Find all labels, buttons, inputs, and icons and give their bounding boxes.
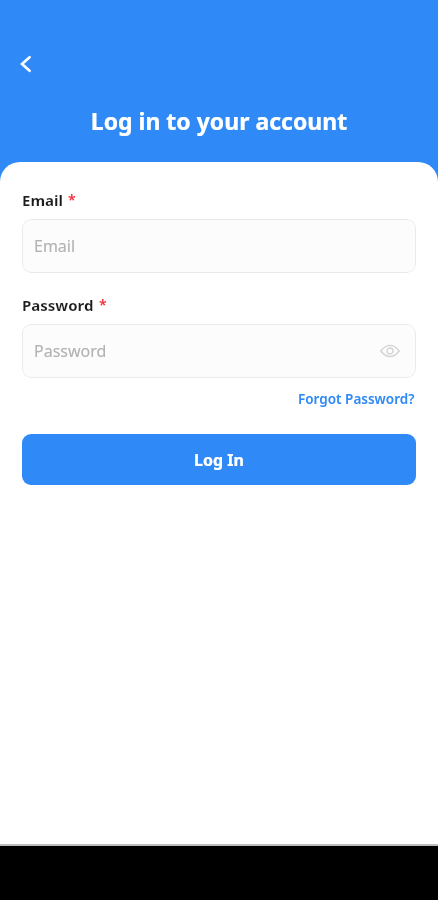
staticText: Forgot Password? (298, 390, 415, 408)
staticText: Password (22, 295, 94, 315)
button[interactable]: Log In (22, 434, 416, 485)
staticText: * (99, 295, 107, 314)
staticText: Log in to your account (0, 105, 438, 136)
staticText: Log In (194, 449, 244, 471)
button[interactable]: Email (22, 219, 416, 273)
staticText: * (68, 190, 76, 209)
staticText: Password (34, 340, 107, 362)
button[interactable]: Back (8, 46, 44, 82)
button[interactable]: Password (22, 324, 416, 378)
button[interactable]: Forgot Password? (295, 386, 418, 412)
button[interactable]: Show password (377, 338, 403, 364)
staticText: Email (34, 235, 76, 257)
staticText: Email (22, 190, 63, 210)
